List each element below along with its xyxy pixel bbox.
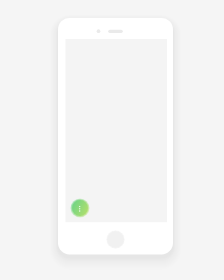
button[interactable]: Home	[106, 230, 125, 249]
button[interactable]: More options	[70, 198, 90, 218]
